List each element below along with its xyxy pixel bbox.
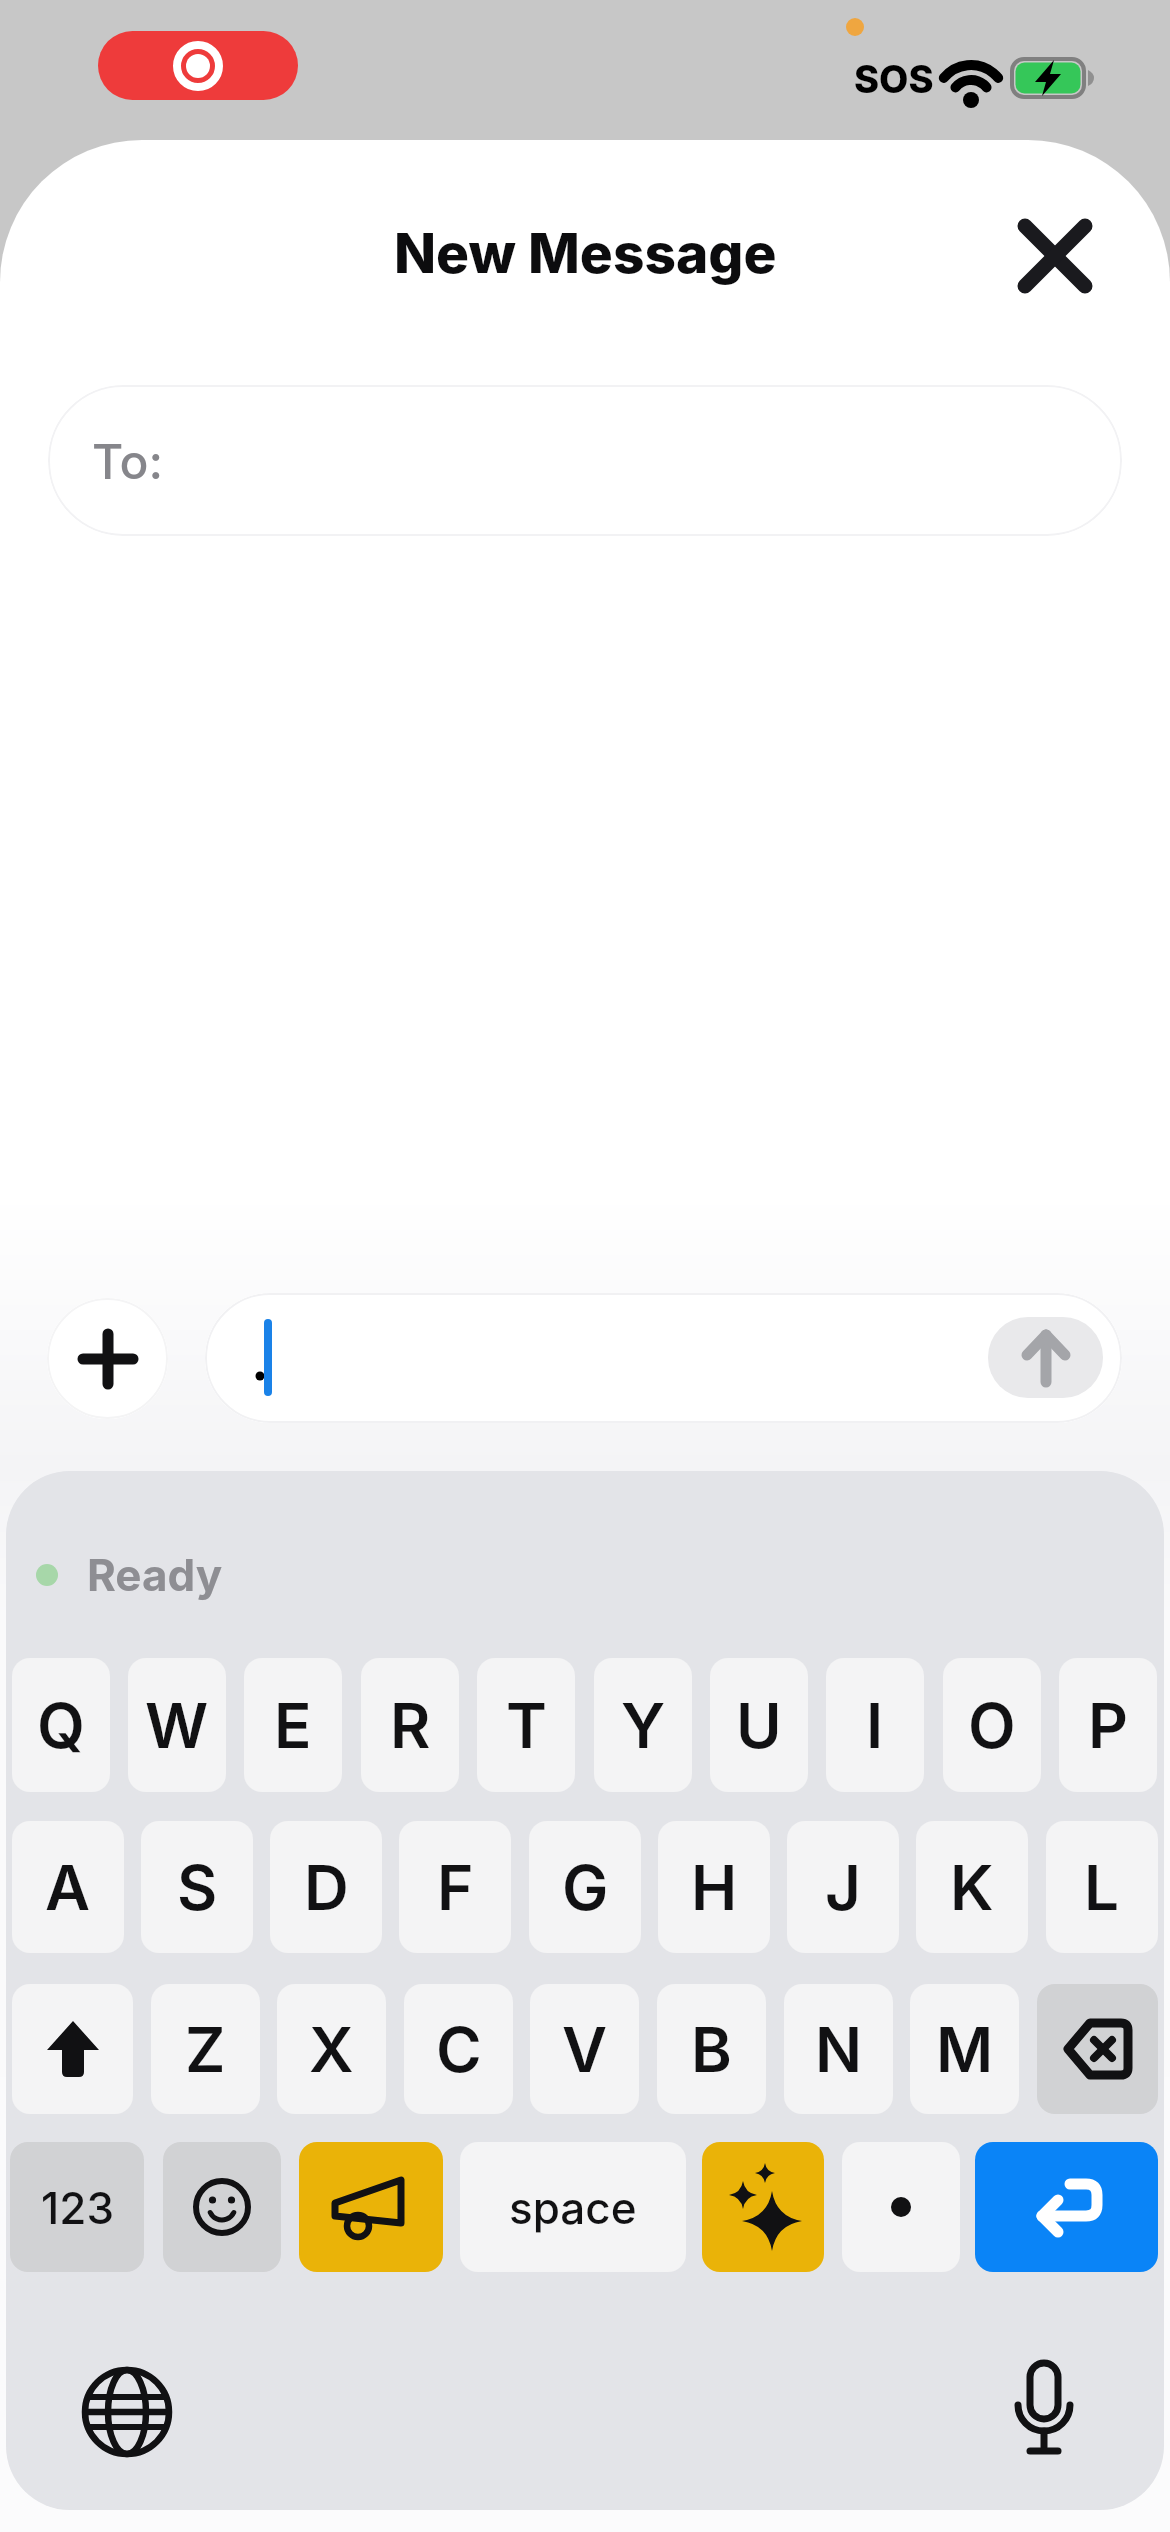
staticText: G xyxy=(562,1850,609,1925)
button[interactable]: L xyxy=(1046,1821,1158,1953)
button[interactable]: U xyxy=(710,1658,808,1792)
staticText: 123 xyxy=(41,2181,114,2234)
button[interactable] xyxy=(12,1984,133,2114)
button[interactable]: Z xyxy=(151,1984,260,2114)
button[interactable] xyxy=(205,1293,1122,1423)
staticText: New Message xyxy=(394,220,777,287)
button[interactable] xyxy=(989,190,1121,322)
button[interactable]: Y xyxy=(594,1658,692,1792)
staticText: B xyxy=(691,2012,732,2087)
staticText: W xyxy=(145,1688,209,1763)
staticText: To: xyxy=(92,432,164,490)
button[interactable]: T xyxy=(477,1658,575,1792)
button[interactable]: F xyxy=(399,1821,511,1953)
button[interactable] xyxy=(163,2142,281,2272)
staticText: F xyxy=(437,1850,474,1925)
button[interactable] xyxy=(999,2357,1089,2465)
button[interactable]: E xyxy=(244,1658,342,1792)
staticText: Ready xyxy=(87,1548,223,1601)
button[interactable]: P xyxy=(1059,1658,1157,1792)
staticText: H xyxy=(691,1850,738,1925)
staticText: K xyxy=(950,1850,994,1925)
button[interactable] xyxy=(82,2367,172,2457)
button[interactable] xyxy=(299,2142,443,2272)
button[interactable] xyxy=(975,2142,1158,2272)
staticText: SOS xyxy=(854,56,934,102)
button[interactable] xyxy=(1037,1984,1158,2114)
staticText: P xyxy=(1088,1688,1128,1763)
button[interactable]: space xyxy=(460,2142,686,2272)
staticText: space xyxy=(509,2181,637,2234)
button[interactable]: W xyxy=(128,1658,226,1792)
button[interactable]: R xyxy=(361,1658,459,1792)
staticText: T xyxy=(506,1688,547,1763)
button[interactable]: D xyxy=(270,1821,382,1953)
button[interactable]: O xyxy=(943,1658,1041,1792)
button[interactable]: V xyxy=(530,1984,639,2114)
staticText: D xyxy=(304,1850,349,1925)
button[interactable]: H xyxy=(658,1821,770,1953)
staticText: Q xyxy=(37,1688,85,1763)
staticText: U xyxy=(736,1688,782,1763)
button[interactable] xyxy=(702,2142,824,2272)
button[interactable] xyxy=(98,31,298,100)
staticText: C xyxy=(436,2012,482,2087)
button[interactable] xyxy=(842,2142,960,2272)
button[interactable]: To: xyxy=(48,385,1122,536)
button[interactable]: M xyxy=(910,1984,1019,2114)
button[interactable]: C xyxy=(404,1984,513,2114)
staticText: M xyxy=(936,2012,994,2087)
staticText: X xyxy=(309,2012,354,2087)
button[interactable]: K xyxy=(916,1821,1028,1953)
staticText: S xyxy=(177,1850,218,1925)
button[interactable]: B xyxy=(657,1984,766,2114)
staticText: V xyxy=(562,2012,608,2087)
staticText: O xyxy=(968,1688,1016,1763)
staticText: N xyxy=(815,2012,863,2087)
button[interactable]: A xyxy=(12,1821,124,1953)
staticText: Z xyxy=(185,2012,226,2087)
button[interactable]: G xyxy=(529,1821,641,1953)
staticText: E xyxy=(274,1688,312,1763)
button[interactable] xyxy=(988,1317,1103,1398)
staticText: A xyxy=(45,1850,91,1925)
button[interactable]: J xyxy=(787,1821,899,1953)
staticText: J xyxy=(825,1850,861,1925)
button[interactable]: N xyxy=(784,1984,893,2114)
button[interactable]: 123 xyxy=(10,2142,144,2272)
staticText: Y xyxy=(621,1688,666,1763)
staticText: L xyxy=(1084,1850,1120,1925)
button[interactable]: S xyxy=(141,1821,253,1953)
button[interactable]: X xyxy=(277,1984,386,2114)
button[interactable] xyxy=(47,1298,168,1419)
button[interactable]: Q xyxy=(12,1658,110,1792)
staticText: R xyxy=(390,1688,431,1763)
button[interactable]: I xyxy=(826,1658,924,1792)
staticText: I xyxy=(866,1688,884,1763)
